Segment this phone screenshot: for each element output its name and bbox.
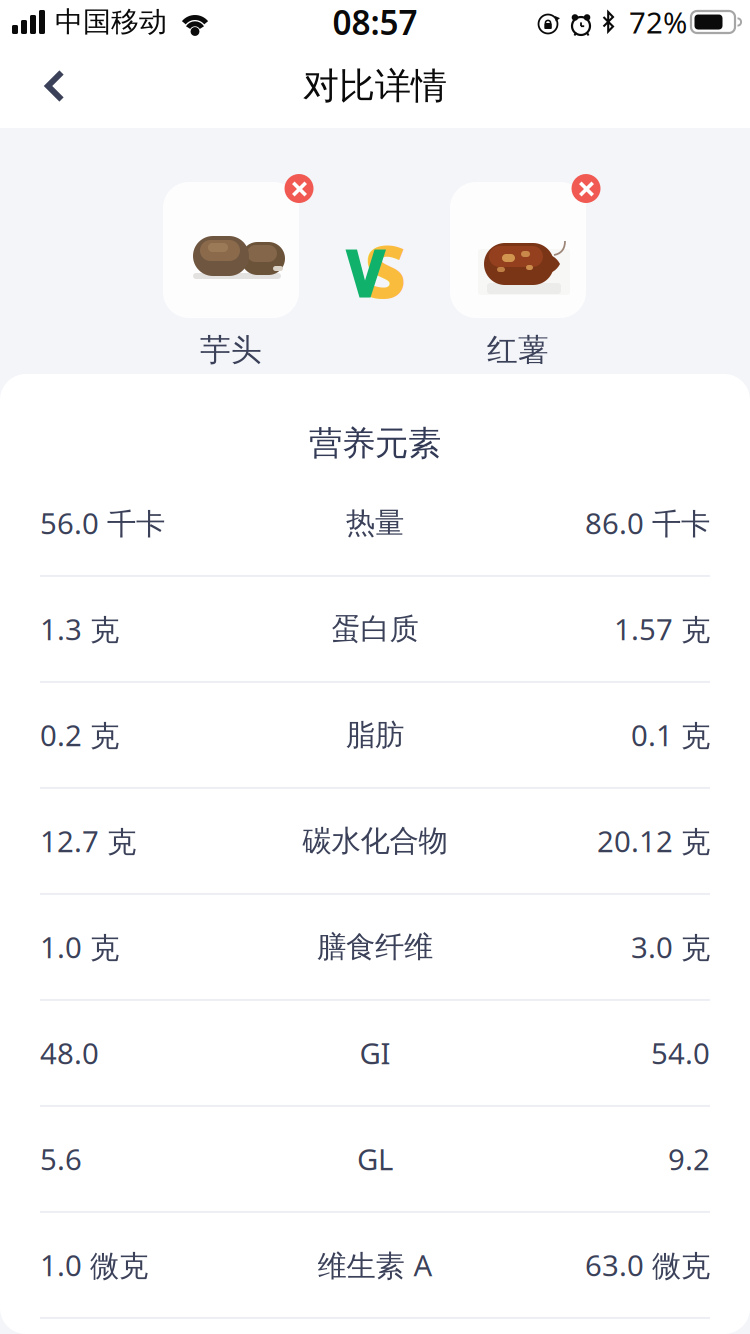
button[interactable]: 移除 芋头 xyxy=(284,174,313,203)
staticText: GI xyxy=(359,1033,390,1072)
staticText: 红薯 xyxy=(487,331,549,369)
staticText: 热量 xyxy=(346,505,404,541)
staticText: S xyxy=(364,223,406,318)
staticText: 蛋白质 xyxy=(331,611,418,647)
staticText: 营养元素 xyxy=(309,423,441,464)
staticText: 3.0 克 xyxy=(631,927,710,966)
staticText: 0.1 克 xyxy=(631,715,710,754)
staticText: 对比详情 xyxy=(303,64,447,108)
staticText: 1.3 克 xyxy=(40,609,119,648)
staticText: GL xyxy=(357,1139,393,1178)
staticText: 维生素 A xyxy=(317,1245,432,1284)
staticText: 脂肪 xyxy=(346,717,404,753)
staticText: 12.7 克 xyxy=(40,821,136,860)
button[interactable]: 移除 红薯 xyxy=(571,174,600,203)
staticText: 48.0 xyxy=(40,1033,99,1072)
staticText: 08:57 xyxy=(332,0,417,44)
staticText: 9.2 xyxy=(668,1139,710,1178)
button[interactable]: 返回 xyxy=(11,42,99,130)
staticText: 0.2 克 xyxy=(40,715,119,754)
staticText: 中国移动 xyxy=(55,5,167,39)
staticText: 86.0 千卡 xyxy=(585,503,710,542)
staticText: 膳食纤维 xyxy=(317,929,433,965)
staticText: 56.0 千卡 xyxy=(40,503,165,542)
staticText: 63.0 微克 xyxy=(585,1245,710,1284)
staticText: 1.0 微克 xyxy=(40,1245,148,1284)
staticText: 1.0 克 xyxy=(40,927,119,966)
staticText: 5.6 xyxy=(40,1139,82,1178)
staticText: 1.57 克 xyxy=(614,609,710,648)
staticText: 芋头 xyxy=(200,331,262,369)
staticText: 54.0 xyxy=(651,1033,710,1072)
staticText: 72% xyxy=(629,2,687,41)
staticText: 20.12 克 xyxy=(597,821,710,860)
staticText: 碳水化合物 xyxy=(302,823,447,859)
